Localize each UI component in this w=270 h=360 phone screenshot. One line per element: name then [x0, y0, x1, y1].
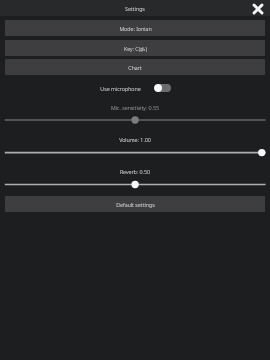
staticText: Chart	[128, 64, 142, 71]
staticText: Settings	[0, 5, 270, 12]
staticText: Mic. sensitivity: 0.55	[0, 104, 270, 111]
staticText: Reverb: 0.50	[0, 168, 270, 175]
staticText: Volume: 1.00	[0, 136, 270, 143]
button[interactable]: Mic. sensitivity: 0.55	[0, 104, 270, 126]
button[interactable]: Reverb: 0.50	[0, 168, 270, 191]
staticText: Key: C(♯♭)	[124, 45, 147, 52]
staticText: Mode: Ionian	[119, 25, 152, 32]
button[interactable]: Chart	[5, 59, 265, 75]
button[interactable]: Close	[251, 2, 265, 16]
staticText: Default settings	[116, 201, 155, 208]
staticText: Use microphone	[100, 85, 141, 92]
button[interactable]: Default settings	[5, 196, 265, 212]
button[interactable]: Volume: 1.00	[0, 136, 270, 159]
button[interactable]: Use microphone	[154, 84, 171, 92]
button[interactable]: Use microphone	[100, 85, 141, 92]
button[interactable]: Mode: Ionian	[5, 20, 265, 36]
button[interactable]: Key: C(♯♭)	[5, 40, 265, 56]
